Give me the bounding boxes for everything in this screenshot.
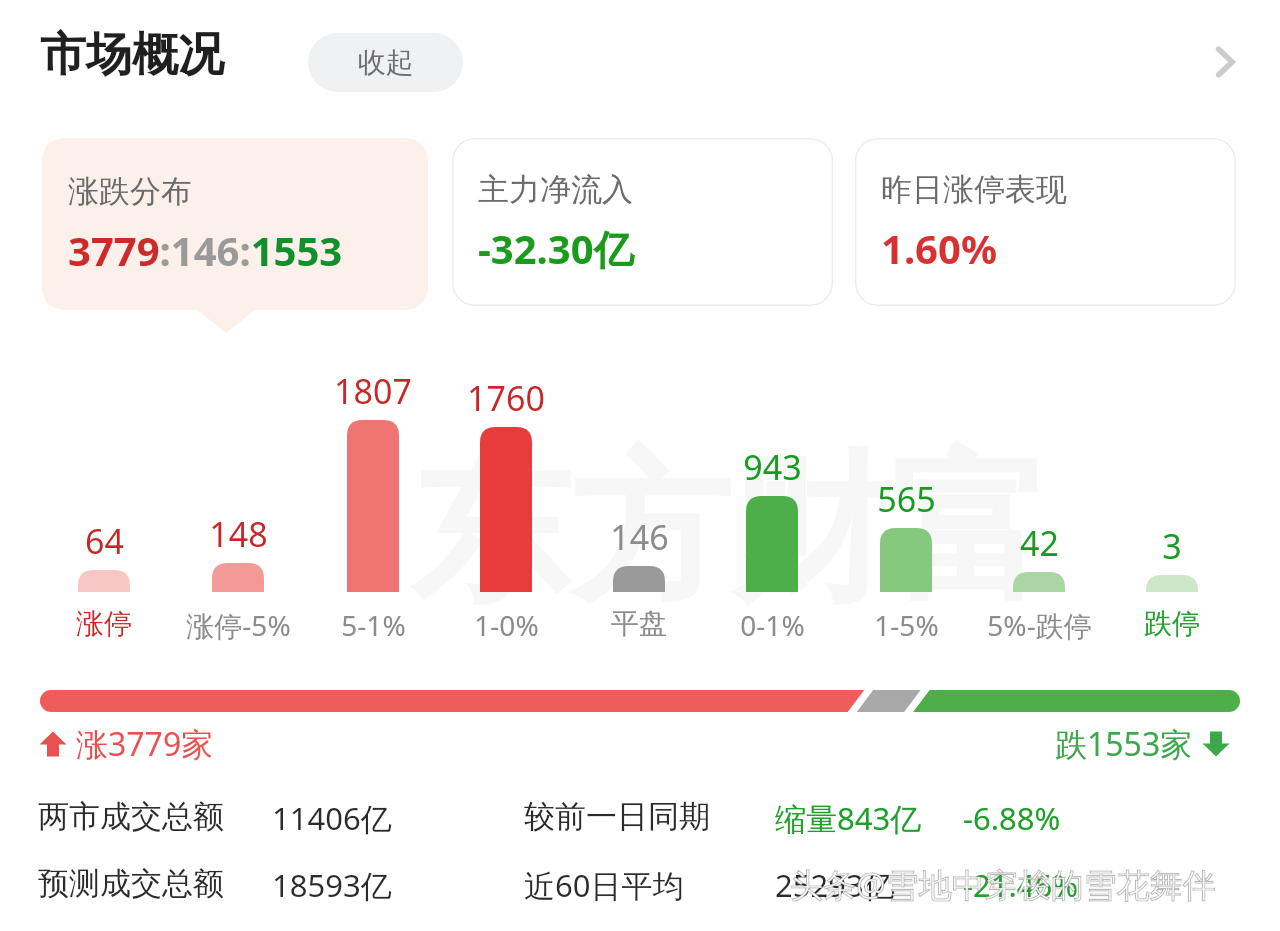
staticText: 146 <box>610 514 669 560</box>
staticText: 943 <box>743 444 802 490</box>
staticText: 1807 <box>334 368 412 414</box>
staticText: 缩量843亿 <box>775 797 922 839</box>
staticText: 涨跌分布 <box>68 172 192 211</box>
staticText: -32.30亿 <box>478 221 634 276</box>
button[interactable]: 涨跌分布 <box>42 138 428 310</box>
staticText: 11406亿 <box>272 797 392 839</box>
button[interactable]: 昨日涨停表现 <box>855 138 1236 306</box>
staticText: 0-1% <box>740 606 805 644</box>
staticText: -21.46% <box>963 864 1078 906</box>
staticText: 收起 <box>358 45 414 80</box>
button[interactable]: 收起 <box>308 33 463 92</box>
staticText: 平盘 <box>611 606 667 641</box>
staticText: 565 <box>877 476 936 522</box>
staticText: 跌1553家 <box>1055 722 1193 766</box>
staticText: 涨停-5% <box>186 606 291 644</box>
staticText: 头条@雪地中穿梭的雪花舞伴 <box>790 862 1216 907</box>
staticText: 5-1% <box>341 606 406 644</box>
button[interactable]: 涨3779家 <box>38 722 214 766</box>
staticText: 25293亿 <box>775 864 895 906</box>
staticText: 1-5% <box>874 606 939 644</box>
staticText: 东方财富 <box>410 430 1050 632</box>
button[interactable]: 跌1553家 <box>1055 722 1231 766</box>
staticText: 42 <box>1020 520 1059 566</box>
staticText: 头条@雪地中穿梭的雪花舞伴 <box>790 862 1216 907</box>
staticText: 跌停 <box>1144 606 1200 641</box>
staticText: 3 <box>1162 523 1182 569</box>
staticText: 1.60% <box>881 221 997 275</box>
staticText: -6.88% <box>963 797 1061 839</box>
staticText: 64 <box>85 518 124 564</box>
staticText: 148 <box>209 511 268 557</box>
button[interactable]: 主力净流入 <box>452 138 833 306</box>
staticText: 两市成交总额 <box>38 797 224 836</box>
staticText: 市场概况 <box>40 26 224 84</box>
staticText: 3779:146:1553 <box>68 223 343 277</box>
staticText: 5%-跌停 <box>987 606 1092 644</box>
staticText: 近60日平均 <box>524 864 684 906</box>
staticText: 主力净流入 <box>478 170 633 209</box>
staticText: 1760 <box>467 375 545 421</box>
staticText: 预测成交总额 <box>38 864 224 903</box>
staticText: 较前一日同期 <box>524 797 710 836</box>
staticText: 涨3779家 <box>76 722 214 766</box>
staticText: 昨日涨停表现 <box>881 170 1067 209</box>
staticText: 1-0% <box>474 606 539 644</box>
button[interactable]: 市场概况 <box>36 22 228 88</box>
staticText: 18593亿 <box>272 864 392 906</box>
button[interactable]: 展开更多 <box>1195 32 1255 92</box>
staticText: 涨停 <box>76 606 132 641</box>
